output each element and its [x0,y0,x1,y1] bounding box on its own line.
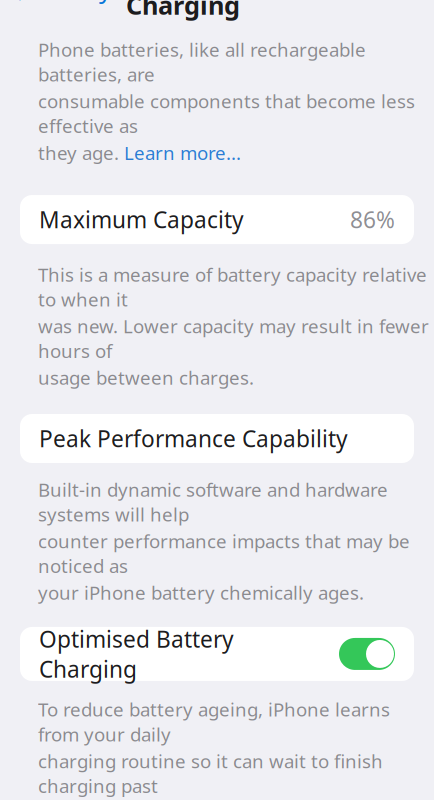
staticText: To reduce battery ageing, iPhone learns … [38,697,390,747]
staticText: Built-in dynamic software and hardware s… [38,477,388,527]
staticText: consumable components that become less e… [38,89,415,138]
staticText: was new. Lower capacity may result in fe… [38,314,429,363]
staticText: Learn more... [124,140,241,165]
staticText: Maximum Capacity [39,204,244,235]
button[interactable]: Optimised Battery Charging [20,627,414,681]
button[interactable]: Learn more... [124,140,241,165]
staticText: 86% [350,204,395,235]
staticText: your iPhone battery chemically ages. [38,580,364,605]
staticText: Battery [27,0,112,5]
staticText: charging routine so it can wait to finis… [38,748,383,798]
button[interactable]: Maximum Capacity [20,195,414,244]
staticText: usage between charges. [38,365,254,390]
staticText: Optimised Battery Charging [39,624,234,684]
staticText: ‹ [12,0,23,15]
staticText: This is a measure of battery capacity re… [38,262,427,312]
button[interactable]: Peak Performance Capability [20,414,414,463]
staticText: Battery Health & Charging [126,0,337,22]
staticText: they age. [38,140,124,165]
staticText: counter performance impacts that may be … [38,529,410,578]
button[interactable]: ‹ [0,0,120,8]
staticText: Phone batteries, like all rechargeable b… [38,37,366,87]
staticText: Peak Performance Capability [39,423,348,453]
